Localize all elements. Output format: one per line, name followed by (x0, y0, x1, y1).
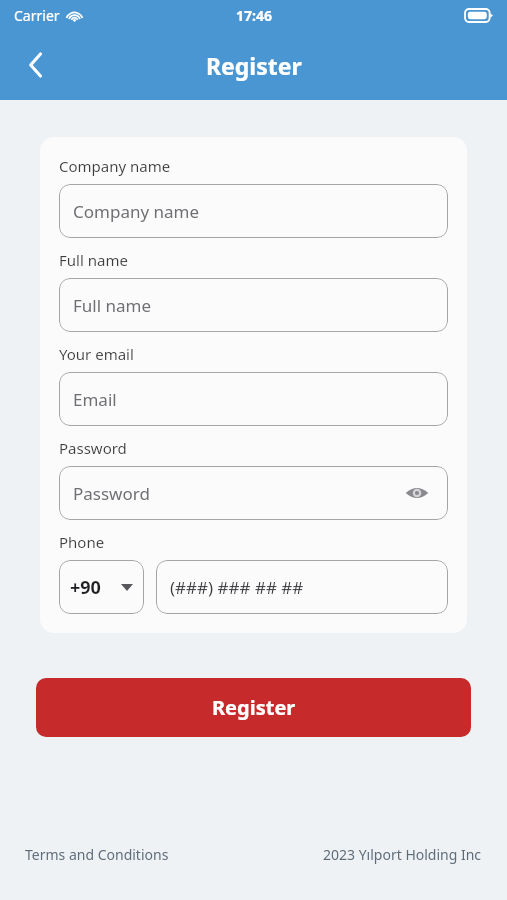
staticText: 17:46 (236, 6, 272, 25)
staticText: Email (73, 388, 117, 411)
button[interactable]: Register (36, 678, 471, 737)
staticText: Your email (59, 344, 134, 364)
staticText: 2023 Yılport Holding Inc (323, 845, 482, 864)
button[interactable]: Back (10, 39, 62, 91)
staticText: Company name (59, 156, 171, 176)
staticText: Full name (59, 250, 128, 270)
staticText: Password (59, 438, 127, 458)
staticText: Carrier (14, 6, 60, 25)
button[interactable]: Full name (59, 278, 448, 332)
staticText: (###) ### ## ## (170, 576, 304, 599)
staticText: Register (212, 694, 296, 721)
button[interactable]: Email (59, 372, 448, 426)
staticText: Terms and Conditions (25, 845, 169, 864)
staticText: Phone (59, 532, 105, 552)
staticText: Register (206, 50, 302, 81)
button[interactable]: +90 (59, 560, 144, 614)
button[interactable]: Company name (59, 184, 448, 238)
staticText: Full name (73, 294, 152, 317)
staticText: +90 (70, 575, 101, 600)
staticText: Password (73, 482, 150, 505)
button[interactable]: Show password (400, 476, 434, 510)
button[interactable]: Terms and Conditions (25, 845, 169, 864)
button[interactable]: Password (59, 466, 448, 520)
button[interactable]: (###) ### ## ## (156, 560, 448, 614)
staticText: Company name (73, 200, 200, 223)
